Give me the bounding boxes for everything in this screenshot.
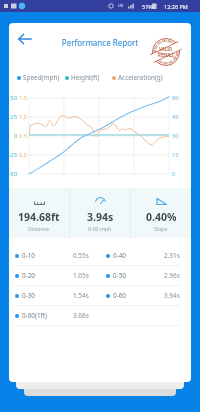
staticText: LTE [118, 4, 124, 8]
button[interactable]: 0-60(1ft) [9, 306, 100, 325]
staticText: 2.31s [164, 251, 180, 260]
staticText: -25 [9, 151, 17, 159]
staticText: 2.96s [164, 271, 180, 280]
button[interactable]: 0-60 [100, 286, 191, 305]
staticText: 0.55s [73, 251, 89, 260]
staticText: 0-50 [113, 271, 127, 280]
staticText: 51% [142, 3, 153, 10]
staticText: 3.94s [87, 210, 114, 224]
button[interactable]: 0-10 [9, 246, 100, 265]
button[interactable]: 0-20 [9, 266, 100, 285]
staticText: Slope [154, 225, 168, 232]
staticText: 0-60 mph [88, 225, 112, 232]
staticText: 0 [172, 170, 176, 178]
staticText: 3.68s [73, 311, 89, 320]
staticText: 0 [9, 132, 17, 140]
staticText: 3.94s [164, 291, 180, 300]
staticText: 1.05s [73, 271, 89, 280]
staticText: 0.40% [146, 210, 177, 224]
staticText: 0-40 [113, 251, 127, 260]
staticText: VALID [159, 46, 173, 52]
staticText: Distance [28, 225, 50, 232]
staticText: Height(ft) [71, 73, 100, 82]
staticText: 60 [172, 94, 179, 102]
staticText: 45 [172, 113, 179, 121]
staticText: 1.0 [19, 113, 28, 121]
staticText: 0-60 [113, 291, 127, 300]
staticText: 1.54s [73, 291, 89, 300]
staticText: Acceleration(g) [118, 73, 163, 82]
staticText: 25 [9, 113, 17, 121]
button[interactable]: 0-40 [100, 246, 191, 265]
staticText: RESULT [158, 52, 174, 58]
button[interactable]: 3.94s [70, 188, 130, 238]
staticText: 194.68ft [18, 210, 60, 224]
staticText: 12:26 PM [164, 3, 188, 10]
button[interactable]: 0.40% [131, 188, 191, 238]
staticText: 30 [172, 132, 179, 140]
button[interactable]: Back [14, 28, 36, 50]
staticText: 0-20 [22, 271, 36, 280]
staticText: 0-60(1ft) [22, 311, 48, 320]
staticText: 0-10 [22, 251, 36, 260]
staticText: 15 [172, 151, 179, 159]
button[interactable]: 0-50 [100, 266, 191, 285]
staticText: 0.5 [19, 132, 28, 140]
staticText: 0-30 [22, 291, 36, 300]
staticText: Speed(mph) [23, 73, 60, 82]
staticText: Performance Report [9, 37, 191, 48]
staticText: 1.5 [19, 94, 28, 102]
button[interactable]: 194.68ft [9, 188, 69, 238]
button[interactable]: 0-30 [9, 286, 100, 305]
staticText: 50 [9, 94, 17, 102]
staticText: 0.0 [19, 151, 28, 159]
staticText: -50 [9, 170, 17, 178]
